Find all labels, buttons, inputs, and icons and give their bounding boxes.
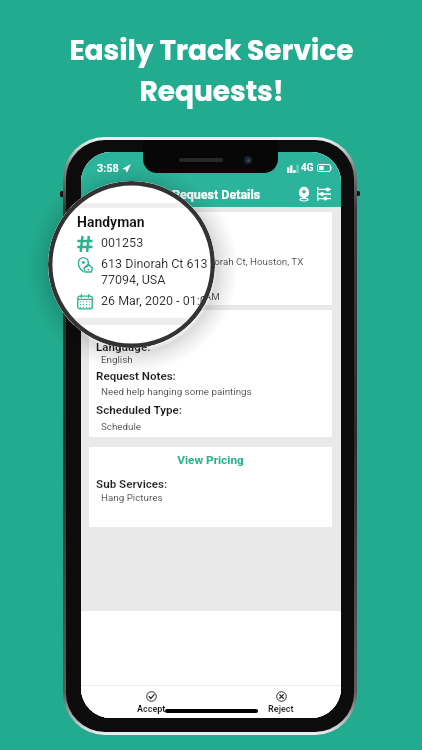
staticText: English [101, 354, 133, 365]
staticText: 26 Mar, 2020 - 01:00 AM [114, 291, 220, 302]
staticText: Request Notes: [96, 369, 176, 383]
staticText: Requests! [139, 72, 284, 111]
staticText: Need help hanging some paintings [101, 386, 252, 397]
staticText: Language: [96, 340, 151, 354]
staticText: Schedule [101, 421, 142, 432]
staticText: Easily Track Service [69, 31, 354, 70]
staticText: 613 Dinorah Ct 613 Dinorah Ct, Houston, … [114, 256, 304, 281]
staticText: 001253 [101, 235, 215, 250]
button[interactable]: Location [294, 184, 314, 204]
button[interactable]: Filter [314, 184, 334, 204]
staticText: Scheduled Type: [96, 403, 183, 417]
button[interactable]: Reject [262, 690, 300, 716]
staticText: 4G [301, 162, 314, 174]
button[interactable]: Accept [131, 690, 172, 716]
button[interactable]: Back [85, 184, 105, 204]
button[interactable]: View Pricing [89, 453, 332, 467]
staticText: Sub Services: [96, 477, 168, 491]
staticText: 26 Mar, 2020 - 01:00 [101, 293, 215, 308]
staticText: Handyman [97, 219, 151, 232]
staticText: 001253 [114, 236, 148, 247]
staticText: Request Details [172, 187, 261, 202]
staticText: Hang Pictures [101, 492, 163, 503]
staticText: 613 Dinorah Ct 613 Din 77094, USA [101, 256, 215, 288]
staticText: 3:58 [97, 162, 119, 175]
staticText: Reject [268, 704, 294, 715]
staticText: Handyman [77, 214, 145, 230]
staticText: Accept [137, 704, 166, 715]
